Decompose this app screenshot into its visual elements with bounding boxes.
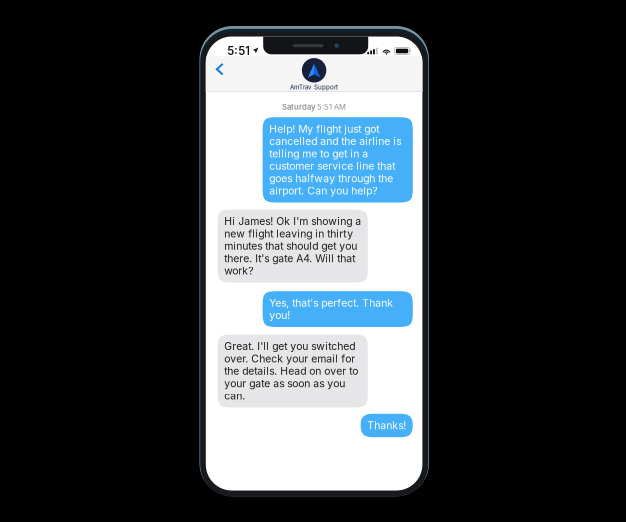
staticText: Help! My flight just got cancelled and t… [269,123,401,197]
staticText: 5:51 AM [317,102,346,112]
button[interactable]: Back [206,59,241,80]
staticText: Thanks! [367,419,406,432]
staticText: AmTrav Support [290,83,338,91]
staticText: Saturday [282,102,317,112]
staticText: Great. I'll get you switched over. Check… [224,340,358,402]
staticText: Yes, that's perfect. Thank you! [269,297,393,322]
staticText: 5:51 [227,44,250,58]
staticText: Hi James! Ok I'm showing a new flight le… [224,215,361,277]
